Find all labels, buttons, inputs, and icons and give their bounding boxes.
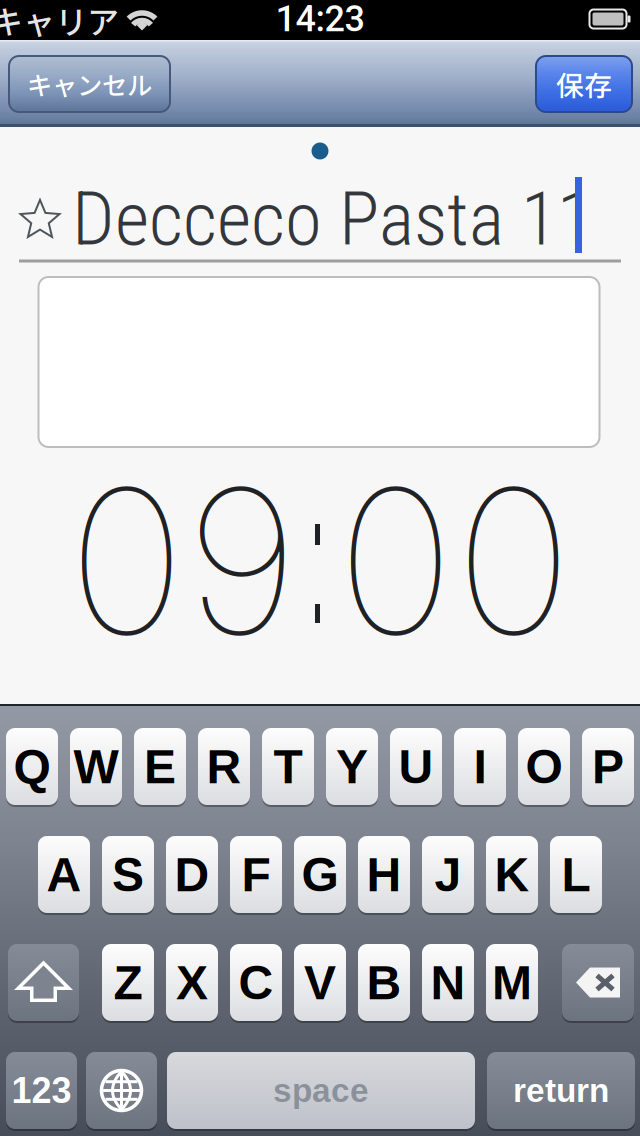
button[interactable]: キャンセル xyxy=(9,56,170,112)
staticText: K xyxy=(494,848,529,901)
staticText: E xyxy=(144,740,176,793)
staticText: T xyxy=(273,740,302,793)
button[interactable]: P xyxy=(582,728,634,805)
staticText: space xyxy=(273,1072,369,1109)
button[interactable]: E xyxy=(134,728,186,805)
staticText: N xyxy=(430,956,465,1009)
staticText: X xyxy=(176,956,208,1009)
staticText: M xyxy=(492,956,532,1009)
button[interactable]: Favourite xyxy=(19,200,60,241)
staticText: Q xyxy=(13,740,50,793)
button[interactable]: L xyxy=(550,836,602,913)
staticText: Decceco Pasta 11 xyxy=(72,175,593,263)
button[interactable]: B xyxy=(358,944,410,1021)
staticText: O xyxy=(525,740,562,793)
button[interactable]: D xyxy=(166,836,218,913)
button[interactable]: T xyxy=(262,728,314,805)
staticText: 保存 xyxy=(556,64,612,104)
staticText: B xyxy=(366,956,401,1009)
staticText: A xyxy=(46,848,81,901)
button[interactable]: X xyxy=(166,944,218,1021)
button[interactable]: S xyxy=(102,836,154,913)
staticText: R xyxy=(206,740,241,793)
staticText: I xyxy=(473,740,486,793)
staticText: 00 xyxy=(336,440,572,682)
staticText: W xyxy=(73,740,118,793)
staticText: 09 xyxy=(67,440,298,682)
staticText: キャンセル xyxy=(27,66,152,102)
staticText: H xyxy=(366,848,401,901)
button[interactable]: A xyxy=(38,836,90,913)
staticText: 123 xyxy=(11,1070,71,1111)
staticText: Z xyxy=(113,956,142,1009)
staticText: F xyxy=(241,848,270,901)
button[interactable]: space xyxy=(167,1052,475,1129)
button[interactable]: J xyxy=(422,836,474,913)
button[interactable]: H xyxy=(358,836,410,913)
staticText: G xyxy=(301,848,338,901)
staticText: return xyxy=(513,1072,609,1109)
staticText: L xyxy=(561,848,590,901)
button[interactable]: O xyxy=(518,728,570,805)
button[interactable]: I xyxy=(454,728,506,805)
button[interactable]: V xyxy=(294,944,346,1021)
staticText: Y xyxy=(336,740,368,793)
button[interactable]: N xyxy=(422,944,474,1021)
staticText: D xyxy=(174,848,209,901)
button[interactable]: M xyxy=(486,944,538,1021)
button[interactable]: 123 xyxy=(6,1052,77,1129)
button[interactable]: R xyxy=(198,728,250,805)
button[interactable]: return xyxy=(487,1052,635,1129)
button[interactable]: W xyxy=(70,728,122,805)
button[interactable]: K xyxy=(486,836,538,913)
staticText: キャリア xyxy=(0,0,119,43)
staticText: J xyxy=(434,848,461,901)
button[interactable]: 保存 xyxy=(536,56,632,112)
button[interactable]: Delete xyxy=(562,944,634,1021)
button[interactable]: C xyxy=(230,944,282,1021)
button[interactable]: U xyxy=(390,728,442,805)
button[interactable]: F xyxy=(230,836,282,913)
staticText: P xyxy=(592,740,624,793)
button[interactable]: Next keyboard xyxy=(86,1052,157,1129)
staticText: 14:23 xyxy=(275,0,364,40)
staticText: U xyxy=(398,740,433,793)
staticText: V xyxy=(304,956,336,1009)
button[interactable]: G xyxy=(294,836,346,913)
button[interactable]: Shift xyxy=(8,944,79,1021)
button[interactable]: Y xyxy=(326,728,378,805)
button[interactable]: Z xyxy=(102,944,154,1021)
staticText: S xyxy=(112,848,144,901)
button[interactable]: Q xyxy=(6,728,58,805)
staticText: C xyxy=(238,956,273,1009)
